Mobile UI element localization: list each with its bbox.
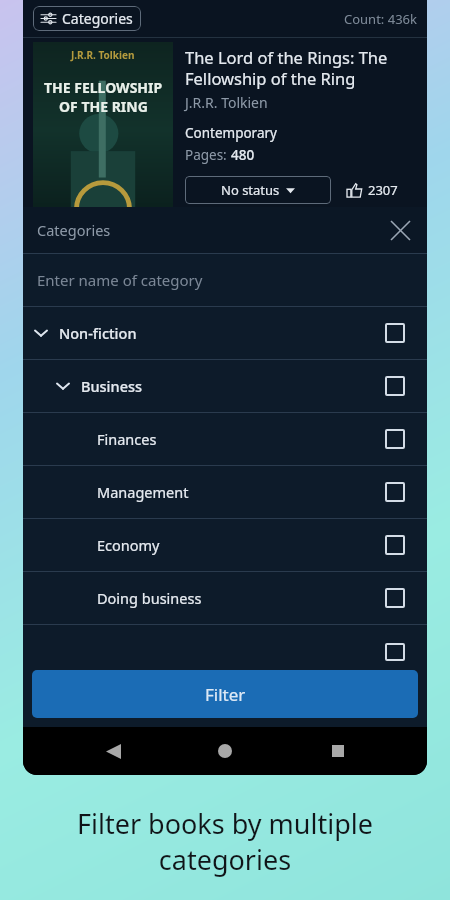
staticText: Pages: — [185, 146, 231, 164]
button[interactable]: Enter name of category — [23, 254, 427, 306]
button[interactable]: Filter — [32, 670, 418, 718]
button[interactable]: Back — [90, 728, 136, 774]
button[interactable]: No status — [185, 176, 331, 204]
staticText: The Lord of the Rings: The Fellowship of… — [185, 46, 388, 90]
staticText: Categories — [62, 9, 133, 28]
staticText: Business — [81, 376, 143, 396]
button[interactable] — [23, 625, 427, 661]
button[interactable]: Management — [23, 466, 427, 518]
button[interactable]: Economy — [23, 519, 427, 571]
staticText: J.R.R. Tolkien — [71, 48, 135, 62]
button[interactable]: Categories — [33, 6, 141, 31]
staticText: THE FELLOWSHIP — [44, 78, 163, 97]
staticText: Enter name of category — [37, 270, 203, 290]
staticText: Finances — [97, 429, 157, 449]
button[interactable]: Recent apps — [315, 728, 361, 774]
staticText: Contemporary — [185, 124, 277, 142]
staticText: OF THE RING — [59, 97, 148, 116]
button[interactable]: Non-fiction — [23, 307, 427, 359]
staticText: No status — [221, 181, 280, 199]
button[interactable]: Finances — [23, 413, 427, 465]
staticText: Filter — [205, 683, 246, 706]
staticText: 480 — [231, 146, 255, 164]
staticText: J.R.R. Tolkien — [185, 93, 268, 112]
staticText: Management — [97, 482, 189, 502]
staticText: Economy — [97, 535, 160, 555]
button[interactable]: Doing business — [23, 572, 427, 624]
button[interactable]: Business — [23, 360, 427, 412]
staticText: Non-fiction — [59, 323, 137, 343]
button[interactable]: Home — [202, 728, 248, 774]
staticText: Doing business — [97, 588, 202, 608]
staticText: Categories — [37, 220, 111, 240]
staticText: 2307 — [368, 181, 398, 199]
staticText: Count: 436k — [344, 10, 417, 28]
staticText: Filter books by multiple categories — [0, 805, 450, 878]
button[interactable]: Close — [383, 213, 417, 247]
